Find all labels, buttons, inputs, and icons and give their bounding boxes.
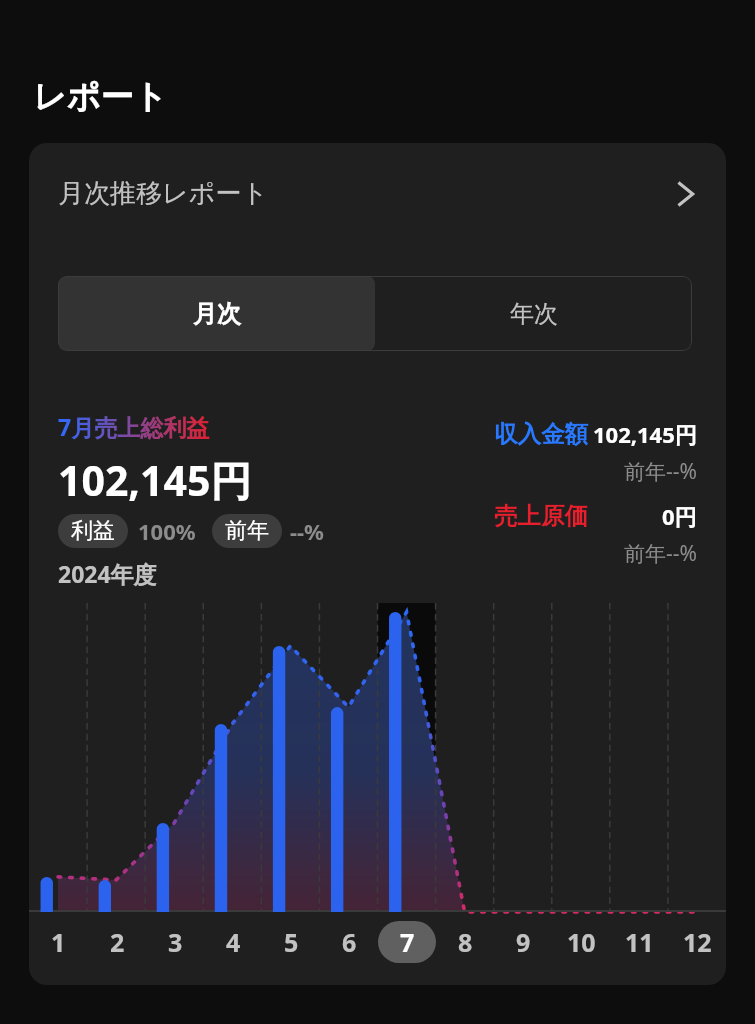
staticText: 前年--% xyxy=(624,457,697,486)
button[interactable]: 1 xyxy=(29,921,88,963)
staticText: 利益 xyxy=(71,517,115,545)
button[interactable]: 7 xyxy=(378,921,436,963)
staticText: 1 xyxy=(51,925,66,959)
staticText: 6 xyxy=(342,925,357,959)
staticText: 100% xyxy=(138,516,196,546)
staticText: 9 xyxy=(516,925,531,959)
staticText: 3 xyxy=(168,925,183,959)
button[interactable]: 年次 xyxy=(375,276,692,351)
staticText: 年次 xyxy=(510,299,558,329)
staticText: 11 xyxy=(625,925,654,959)
button[interactable]: 月次推移レポート xyxy=(29,143,726,244)
staticText: 前年 xyxy=(225,517,269,545)
other: 月次推移レポートを開く xyxy=(673,182,697,206)
staticText: --% xyxy=(290,516,324,546)
button[interactable]: 2 xyxy=(88,921,146,963)
staticText: 売上原価 xyxy=(494,501,588,531)
staticText: 0円 xyxy=(662,501,697,531)
button[interactable]: 11 xyxy=(610,921,668,963)
staticText: 前年--% xyxy=(624,539,697,568)
staticText: レポート xyxy=(33,76,168,118)
staticText: 2024年度 xyxy=(58,558,157,589)
button[interactable]: 8 xyxy=(436,921,494,963)
staticText: 収入金額 xyxy=(494,419,588,449)
staticText: 102,145円 xyxy=(58,452,252,508)
staticText: 8 xyxy=(458,925,473,959)
button[interactable]: 12 xyxy=(668,921,726,963)
staticText: 月次 xyxy=(193,299,241,329)
staticText: 月次推移レポート xyxy=(58,177,268,210)
staticText: 4 xyxy=(226,925,241,959)
staticText: 12 xyxy=(683,925,712,959)
staticText: 102,145円 xyxy=(593,419,697,449)
staticText: 5 xyxy=(284,925,299,959)
button[interactable]: 月次 xyxy=(58,276,375,351)
staticText: 7 xyxy=(400,925,415,959)
button[interactable]: 6 xyxy=(320,921,378,963)
staticText: 7月売上総利益 xyxy=(58,411,210,442)
button[interactable]: 10 xyxy=(552,921,610,963)
staticText: 2 xyxy=(110,925,125,959)
button[interactable]: 9 xyxy=(494,921,552,963)
button[interactable]: 5 xyxy=(262,921,320,963)
button[interactable]: 3 xyxy=(146,921,204,963)
button[interactable]: 4 xyxy=(204,921,262,963)
staticText: 10 xyxy=(567,925,596,959)
